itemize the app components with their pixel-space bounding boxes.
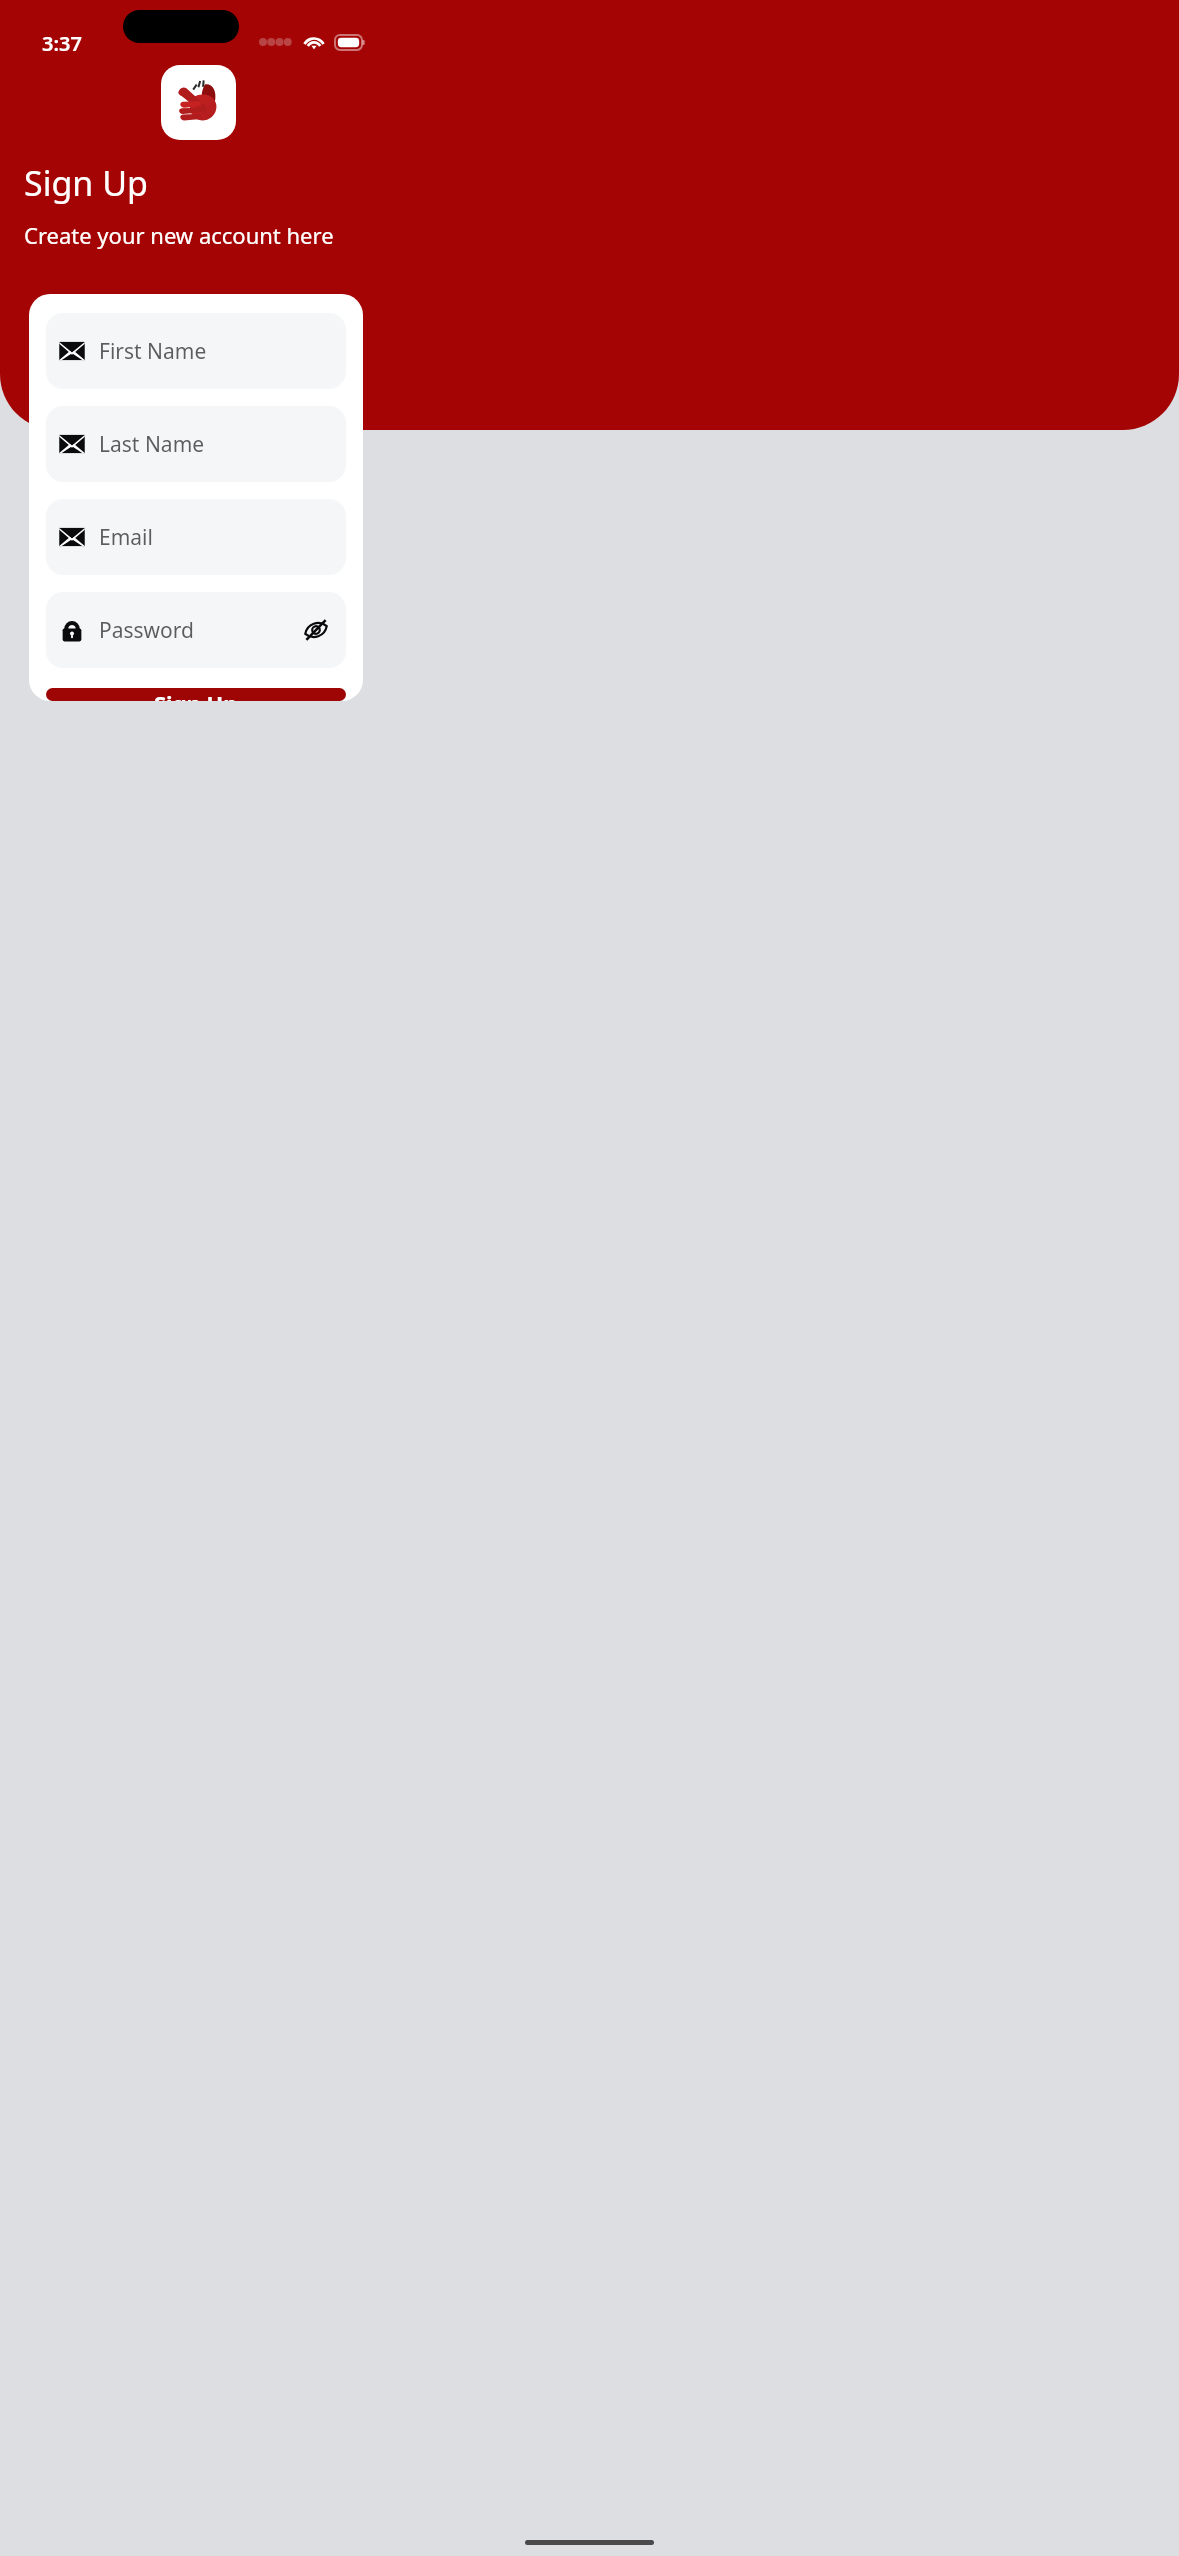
staticText: Create your new account here	[24, 220, 334, 250]
staticText: Last Name	[99, 430, 205, 459]
staticText: Sign Up	[24, 160, 148, 206]
button[interactable]: Email	[46, 499, 346, 575]
staticText: Password	[99, 616, 194, 645]
button[interactable]: Sign Up	[46, 688, 346, 701]
button[interactable]: First Name	[46, 313, 346, 389]
staticText: First Name	[99, 337, 207, 366]
button[interactable]: Last Name	[46, 406, 346, 482]
staticText: Email	[99, 523, 153, 552]
staticText: Sign Up	[154, 688, 238, 701]
button[interactable]: Password	[46, 592, 346, 668]
staticText: 3:37	[42, 30, 82, 57]
button[interactable]: Show password	[299, 613, 333, 647]
